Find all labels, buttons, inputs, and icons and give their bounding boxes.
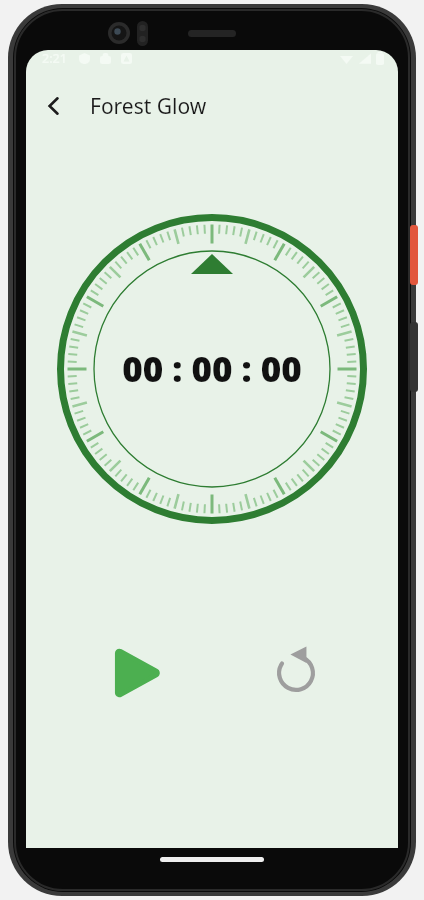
staticText: 2:21	[42, 50, 67, 67]
staticText: Forest Glow	[90, 92, 207, 121]
button[interactable]: Start timer	[100, 637, 172, 709]
staticText: 00 : 00 : 00	[122, 345, 302, 393]
button[interactable]: Reset timer	[260, 637, 332, 709]
button[interactable]: Back	[30, 82, 78, 130]
